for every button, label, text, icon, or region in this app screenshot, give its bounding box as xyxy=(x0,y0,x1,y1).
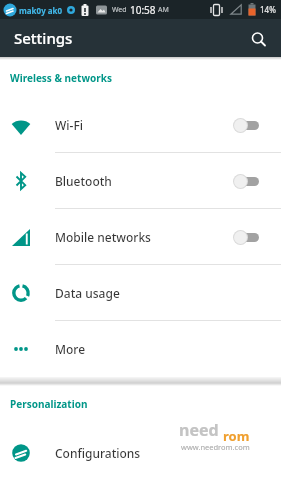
staticText: AM xyxy=(158,5,169,15)
button[interactable]: Configurations xyxy=(0,425,281,481)
staticText: Settings xyxy=(14,28,73,48)
staticText: mak0y ak0 xyxy=(19,5,63,16)
button[interactable]: Bluetooth xyxy=(0,153,281,208)
button[interactable] xyxy=(233,173,259,189)
staticText: rom xyxy=(223,427,250,445)
button[interactable]: Data usage xyxy=(0,265,281,320)
staticText: Mobile networks xyxy=(55,229,151,245)
staticText: www.needrom.com xyxy=(181,442,250,452)
staticText: Configurations xyxy=(55,445,141,461)
button[interactable]: Wi-Fi xyxy=(0,97,281,152)
button[interactable]: More xyxy=(0,321,281,377)
staticText: Bluetooth xyxy=(55,173,112,189)
button[interactable] xyxy=(233,229,259,245)
staticText: Wed xyxy=(112,5,127,15)
staticText: More xyxy=(55,341,86,357)
staticText: need xyxy=(179,419,219,441)
staticText: Data usage xyxy=(55,285,120,301)
staticText: 10:58 xyxy=(130,3,156,17)
button[interactable] xyxy=(245,24,273,52)
staticText: 14% xyxy=(260,4,276,15)
button[interactable] xyxy=(233,117,259,133)
staticText: Wireless & networks xyxy=(10,71,112,85)
staticText: Wi-Fi xyxy=(55,117,83,133)
staticText: Personalization xyxy=(10,397,88,411)
button[interactable]: Mobile networks xyxy=(0,209,281,264)
